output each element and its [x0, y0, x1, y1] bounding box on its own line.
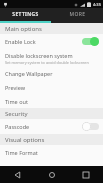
- staticText: Security: [5, 110, 28, 118]
- button[interactable]: Time Format: [0, 145, 103, 159]
- staticText: Visual options: [5, 136, 45, 144]
- button[interactable]: SETTINGS: [0, 8, 51, 21]
- staticText: Set memory system to avoid double locksc…: [5, 60, 89, 65]
- button[interactable]: Change Wallpaper: [0, 66, 103, 80]
- button[interactable]: Passcode: [0, 119, 103, 134]
- button[interactable]: Recents: [69, 166, 103, 183]
- staticText: Disable lockscreen system: [5, 52, 73, 59]
- staticText: 4:35: [93, 2, 101, 7]
- button[interactable]: Disable lockscreen system: [0, 49, 103, 66]
- staticText: Time out: [5, 98, 28, 105]
- button[interactable]: Enable Lock: [0, 34, 103, 49]
- staticText: Time Format: [5, 149, 38, 156]
- staticText: Enable Lock: [5, 38, 82, 45]
- staticText: Change Wallpaper: [5, 70, 53, 77]
- button[interactable]: Back: [0, 166, 35, 183]
- button[interactable]: MORE: [51, 8, 103, 21]
- staticText: Preview: [5, 84, 26, 91]
- button[interactable]: Preview: [0, 80, 103, 94]
- staticText: Passcode: [5, 123, 82, 130]
- staticText: SETTINGS: [12, 11, 39, 18]
- button[interactable]: Home: [35, 166, 69, 183]
- button[interactable]: Time out: [0, 94, 103, 108]
- staticText: MORE: [69, 11, 86, 18]
- staticText: Main options: [5, 25, 42, 33]
